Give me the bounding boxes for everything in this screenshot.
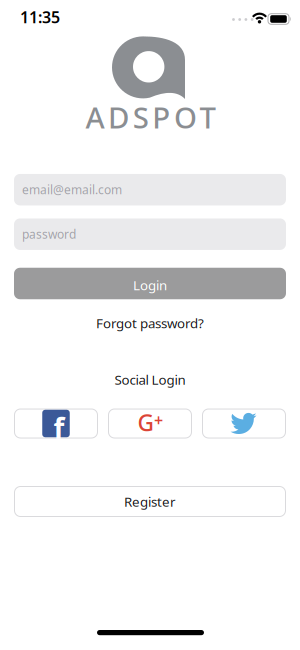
- button[interactable]: Sign in with Facebook: [14, 408, 98, 438]
- staticText: f: [53, 409, 64, 447]
- staticText: +: [154, 409, 163, 431]
- button[interactable]: Forgot password?: [96, 314, 204, 332]
- button[interactable]: Login: [14, 268, 286, 299]
- button[interactable]: Register: [14, 486, 286, 517]
- staticText: Login: [133, 276, 167, 294]
- staticText: password: [22, 226, 76, 242]
- staticText: 11:35: [20, 6, 60, 28]
- staticText: email@email.com: [22, 182, 122, 198]
- staticText: Social Login: [114, 371, 185, 388]
- button[interactable]: Sign in with Twitter: [202, 408, 286, 438]
- button[interactable]: Sign in with Google: [108, 408, 192, 438]
- staticText: G: [137, 407, 153, 437]
- staticText: Register: [124, 493, 176, 510]
- staticText: ADSPOT: [85, 97, 215, 136]
- staticText: Forgot password?: [96, 314, 204, 332]
